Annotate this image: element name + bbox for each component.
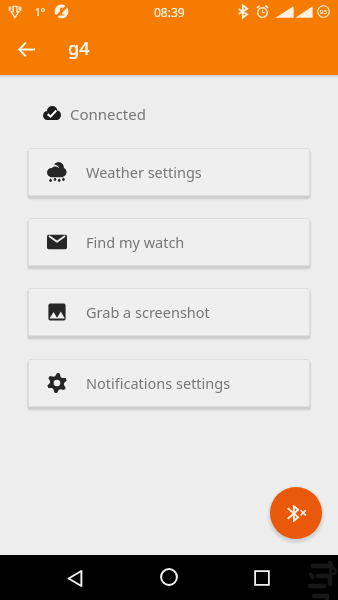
staticText: Find my watch bbox=[86, 232, 185, 252]
staticText: g4 bbox=[68, 36, 90, 61]
staticText: Weather settings bbox=[86, 162, 202, 182]
button[interactable]: Disconnect bluetooth bbox=[270, 487, 322, 539]
button[interactable]: Back bbox=[57, 560, 93, 596]
button[interactable]: Find my watch bbox=[28, 218, 310, 266]
button[interactable]: Weather settings bbox=[28, 148, 310, 196]
staticText: Grab a screenshot bbox=[86, 302, 210, 322]
button[interactable]: Home bbox=[151, 559, 187, 595]
staticText: 93 bbox=[320, 8, 327, 16]
button[interactable]: Grab a screenshot bbox=[28, 288, 310, 336]
staticText: Notifications settings bbox=[86, 373, 231, 393]
staticText: Connected bbox=[70, 104, 146, 122]
staticText: 1° bbox=[35, 5, 45, 19]
button[interactable]: Notifications settings bbox=[28, 359, 310, 407]
staticText: 08:39 bbox=[154, 4, 185, 20]
button[interactable]: Recents bbox=[244, 560, 280, 596]
button[interactable]: Back bbox=[11, 33, 43, 65]
